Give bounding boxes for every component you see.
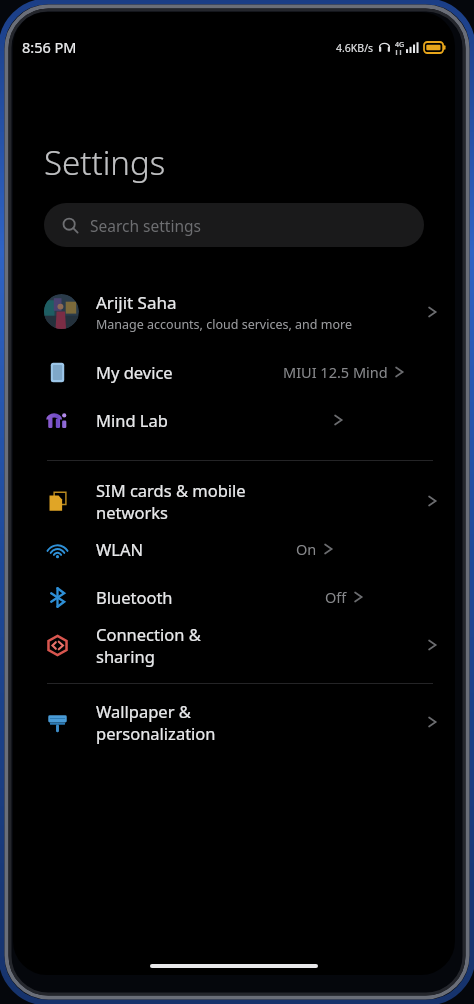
staticText: Bluetooth xyxy=(96,586,173,608)
staticText: 8:56 PM xyxy=(22,37,77,57)
staticText: Off xyxy=(325,587,347,607)
other: Bluetooth xyxy=(47,587,68,608)
staticText: SIM cards & mobile networks xyxy=(96,479,262,523)
staticText: On xyxy=(296,539,317,559)
staticText: Wallpaper & personalization xyxy=(96,700,262,744)
button[interactable]: Mind Lab xyxy=(13,396,455,444)
staticText: Manage accounts, cloud services, and mor… xyxy=(96,316,352,333)
button[interactable]: Bluetooth xyxy=(13,573,455,621)
button[interactable]: Arijit Saha xyxy=(13,275,455,348)
staticText: Connection & sharing xyxy=(96,623,262,667)
other: My device xyxy=(47,362,68,383)
staticText: Search settings xyxy=(90,215,201,236)
other: Mind Lab xyxy=(47,410,68,431)
staticText: 4.6KB/s xyxy=(336,41,374,55)
staticText: Mind Lab xyxy=(96,409,168,431)
button[interactable]: My device xyxy=(13,348,455,396)
other: SIM cards and mobile networks xyxy=(47,491,68,512)
staticText: Arijit Saha xyxy=(96,291,177,314)
staticText: My device xyxy=(96,361,173,383)
button[interactable]: Wallpaper and personalization xyxy=(13,698,455,746)
staticText: Settings xyxy=(44,140,166,185)
button[interactable]: Connection and sharing xyxy=(13,621,455,669)
button[interactable]: SIM cards and mobile networks xyxy=(13,477,455,525)
button[interactable]: WLAN xyxy=(13,525,455,573)
other: Wallpaper and personalization xyxy=(47,712,68,733)
staticText: WLAN xyxy=(96,538,144,560)
button[interactable]: Search settings xyxy=(44,203,424,247)
other: WLAN xyxy=(47,539,68,560)
staticText: 4G xyxy=(395,40,405,50)
staticText: MIUI 12.5 Mind xyxy=(283,362,388,382)
other: Connection and sharing xyxy=(47,635,68,656)
